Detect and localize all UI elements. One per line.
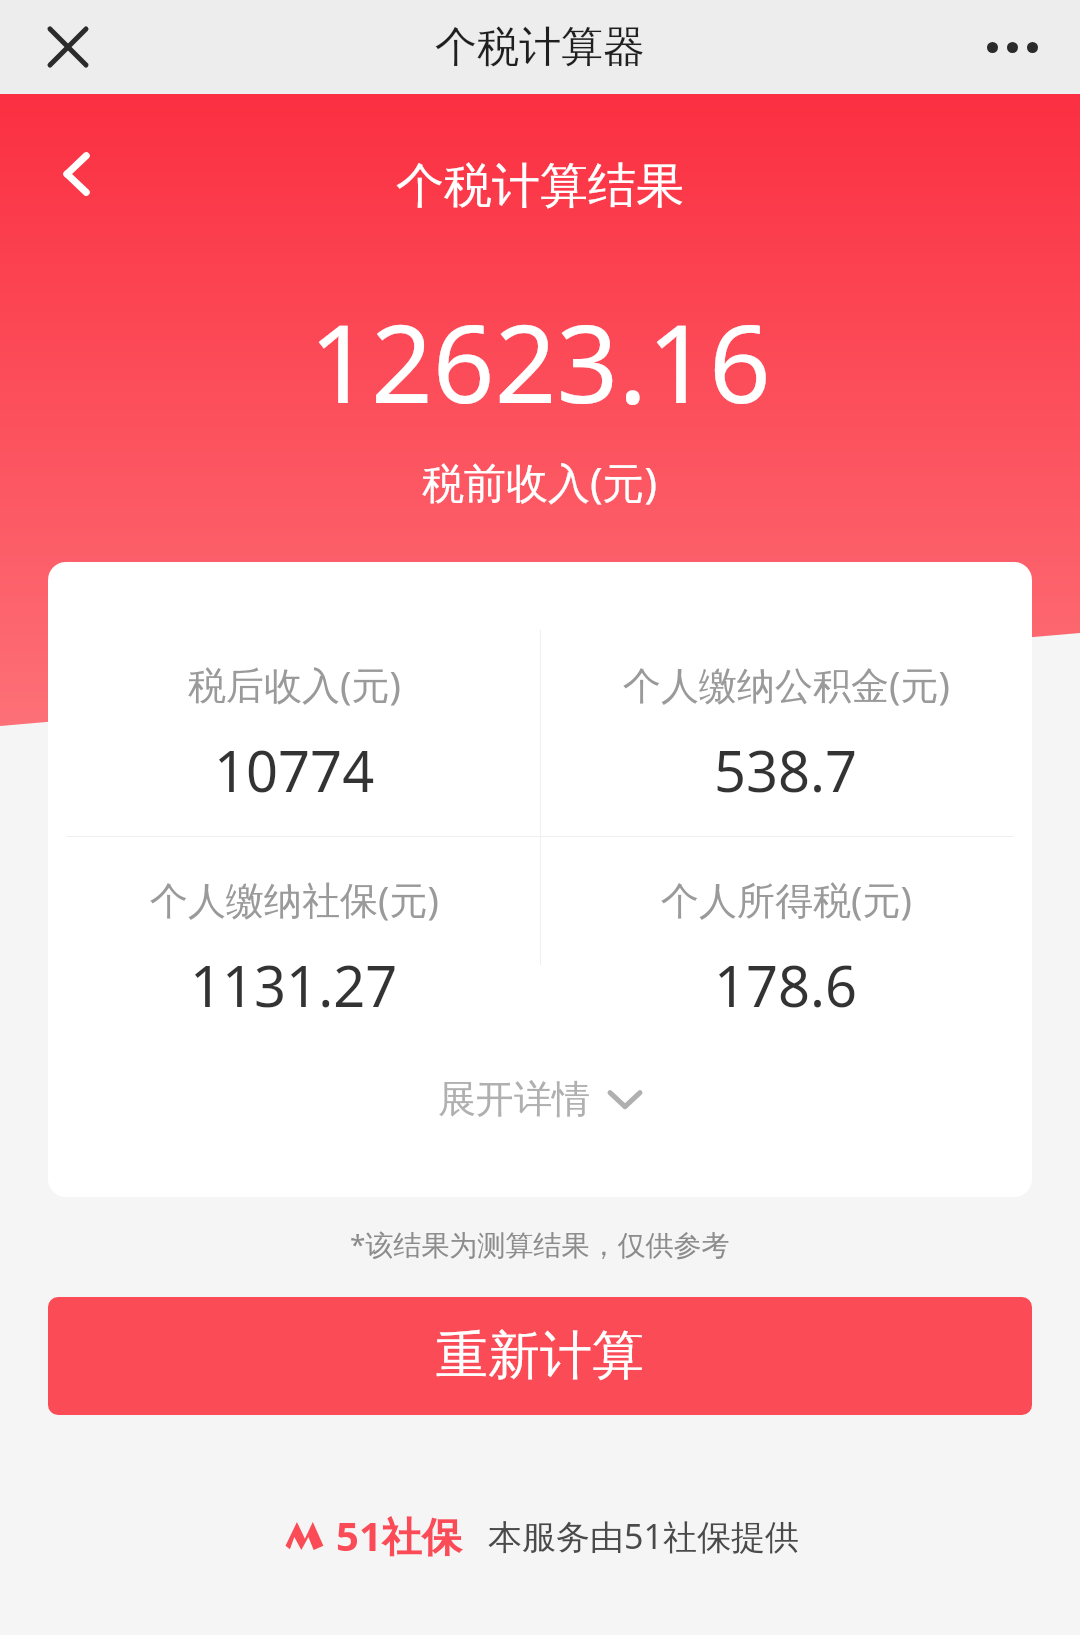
button[interactable]: More options [968, 3, 1056, 91]
button[interactable]: Close [24, 3, 112, 91]
button[interactable]: 个人缴纳社保(元) [48, 873, 540, 1023]
staticText: *该结果为测算结果，仅供参考 [350, 1225, 730, 1263]
staticText: 展开详情 [438, 1075, 590, 1123]
staticText: 个人缴纳公积金(元) [623, 658, 950, 710]
staticText: 个税计算结果 [396, 156, 684, 216]
staticText: 51社保 [336, 1508, 462, 1563]
staticText: 税后收入(元) [188, 658, 401, 710]
staticText: 178.6 [714, 947, 858, 1023]
staticText: 个税计算器 [435, 21, 645, 74]
staticText: 个人缴纳社保(元) [150, 873, 439, 925]
staticText: 本服务由51社保提供 [488, 1513, 799, 1559]
staticText: 538.7 [714, 732, 858, 808]
button[interactable]: 个人所得税(元) [540, 873, 1032, 1023]
staticText: 10774 [214, 732, 375, 808]
staticText: 重新计算 [436, 1323, 644, 1389]
staticText: 个人所得税(元) [661, 873, 912, 925]
button[interactable]: 展开详情 [48, 1065, 1032, 1133]
button[interactable]: Back [30, 126, 126, 222]
staticText: 12623.16 [309, 288, 771, 435]
button[interactable]: 个人缴纳公积金(元) [540, 658, 1032, 808]
button[interactable]: 税后收入(元) [48, 658, 540, 808]
staticText: 1131.27 [190, 947, 398, 1023]
staticText: 税前收入(元) [422, 453, 658, 510]
button[interactable]: 重新计算 [48, 1297, 1032, 1415]
